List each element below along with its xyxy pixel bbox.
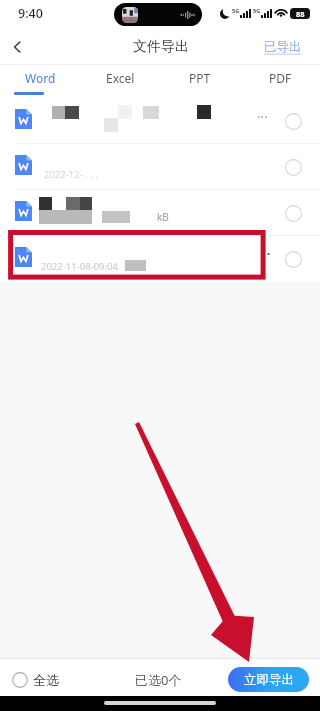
- staticText: 文件导出: [133, 38, 189, 56]
- staticText: 已选0个: [135, 671, 182, 689]
- staticText: 9:40: [18, 5, 43, 22]
- button[interactable]: ···: [0, 98, 320, 144]
- button[interactable]: kB: [0, 190, 320, 236]
- button[interactable]: PPT: [160, 65, 240, 98]
- staticText: 立即导出: [244, 672, 294, 688]
- staticText: 5G: [232, 7, 240, 14]
- staticText: 已导出: [264, 39, 302, 55]
- staticText: 5G: [253, 7, 261, 14]
- button[interactable]: Back: [0, 30, 33, 63]
- button[interactable]: Word: [0, 65, 80, 98]
- button[interactable]: 2022-11-08-09:04: [0, 236, 320, 282]
- button[interactable]: 2022-12- . . .: [0, 144, 320, 190]
- staticText: PDF: [269, 70, 292, 86]
- staticText: 全选: [33, 672, 59, 688]
- button[interactable]: Excel: [80, 65, 160, 98]
- staticText: ···: [257, 108, 268, 126]
- button[interactable]: 立即导出: [228, 667, 309, 692]
- button[interactable]: 全选: [12, 672, 59, 688]
- staticText: kB: [157, 210, 169, 224]
- staticText: 88: [296, 9, 305, 19]
- staticText: Excel: [106, 70, 135, 86]
- button[interactable]: 已导出: [264, 39, 302, 55]
- staticText: PPT: [189, 70, 211, 86]
- staticText: 2022-11-08-09:04: [41, 260, 118, 273]
- staticText: Word: [25, 70, 56, 86]
- button[interactable]: PDF: [240, 65, 320, 98]
- staticText: 2022-12- . . .: [44, 168, 98, 181]
